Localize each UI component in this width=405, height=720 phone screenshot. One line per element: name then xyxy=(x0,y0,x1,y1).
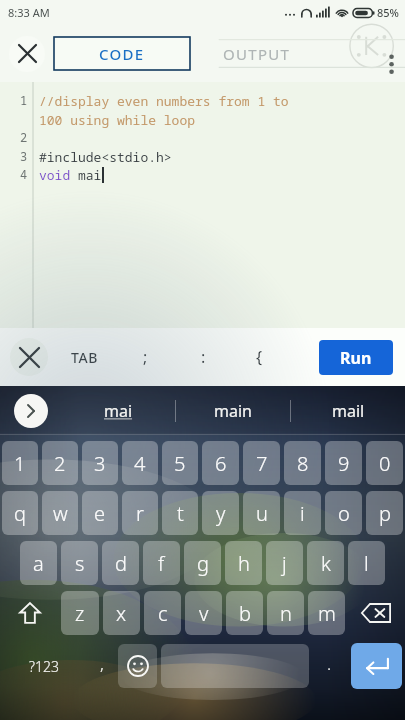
staticText: u xyxy=(256,500,268,527)
staticText: 8 xyxy=(297,450,309,477)
button[interactable]: s xyxy=(61,541,98,585)
button[interactable]: u xyxy=(243,491,280,535)
button[interactable]: 8 xyxy=(284,441,321,485)
button[interactable]: Emoji xyxy=(118,644,157,688)
staticText: //display even numbers from 1 to 100 usi… xyxy=(39,92,289,129)
staticText: 3 xyxy=(20,148,28,164)
button[interactable]: p xyxy=(366,491,403,535)
button[interactable]: j xyxy=(266,541,303,585)
button[interactable]: 5 xyxy=(162,441,198,485)
button[interactable]: CODE xyxy=(54,37,190,70)
button[interactable]: m xyxy=(308,591,345,635)
button[interactable]: o xyxy=(325,491,362,535)
staticText: g xyxy=(197,550,209,577)
staticText: 4 xyxy=(20,166,28,182)
button[interactable]: Hide keyboard xyxy=(4,332,54,382)
staticText: mai xyxy=(104,400,133,422)
staticText: Run xyxy=(340,347,372,369)
staticText: 5 xyxy=(174,450,186,477)
button[interactable]: Enter xyxy=(351,643,402,689)
staticText: m xyxy=(318,600,336,627)
button[interactable]: d xyxy=(102,541,139,585)
staticText: OUTPUT xyxy=(223,44,291,64)
button[interactable]: z xyxy=(61,591,99,635)
staticText: w xyxy=(53,500,68,527)
button[interactable]: . xyxy=(311,640,348,692)
button[interactable]: 7 xyxy=(243,441,280,485)
button[interactable]: f xyxy=(143,541,180,585)
button[interactable]: r xyxy=(122,491,158,535)
button[interactable]: c xyxy=(144,591,181,635)
button[interactable]: OUTPUT xyxy=(190,37,324,70)
button[interactable]: n xyxy=(267,591,304,635)
button[interactable]: i xyxy=(284,491,321,535)
button[interactable]: y xyxy=(202,491,239,535)
button[interactable]: v xyxy=(185,591,222,635)
button[interactable]: a xyxy=(20,541,57,585)
staticText: 6 xyxy=(215,450,227,477)
button[interactable]: 3 xyxy=(82,441,118,485)
button[interactable]: More suggestions xyxy=(0,386,62,435)
staticText: x xyxy=(116,600,127,627)
button[interactable]: Backspace xyxy=(347,588,405,638)
button[interactable]: h xyxy=(225,541,262,585)
staticText: ?123 xyxy=(29,657,59,676)
staticText: 0 xyxy=(379,450,391,477)
staticText: 1 xyxy=(20,92,28,108)
button[interactable]: 9 xyxy=(325,441,362,485)
button[interactable]: main xyxy=(176,386,290,435)
button[interactable]: k xyxy=(307,541,344,585)
button[interactable]: : xyxy=(174,335,232,379)
staticText: 2 xyxy=(20,129,28,145)
staticText: f xyxy=(158,550,165,577)
staticText: main xyxy=(214,400,252,422)
staticText: { xyxy=(256,346,263,368)
staticText: #include<stdio.h> xyxy=(39,148,172,166)
staticText: c xyxy=(158,600,168,627)
staticText: e xyxy=(94,500,106,527)
staticText: l xyxy=(364,550,369,577)
staticText: . xyxy=(327,652,332,675)
staticText: ; xyxy=(143,346,148,368)
staticText: b xyxy=(239,600,251,627)
staticText: 3 xyxy=(94,450,106,477)
button[interactable]: q xyxy=(2,491,38,535)
button[interactable]: 1 xyxy=(2,441,38,485)
button[interactable]: { xyxy=(232,335,286,379)
button[interactable]: 2 xyxy=(42,441,78,485)
button[interactable]: ?123 xyxy=(0,640,88,692)
staticText: r xyxy=(136,500,144,527)
staticText: CODE xyxy=(99,44,145,64)
staticText: a xyxy=(33,550,44,577)
button[interactable]: ; xyxy=(116,335,174,379)
staticText: y xyxy=(216,500,226,527)
button[interactable]: TAB xyxy=(54,335,116,379)
button[interactable]: l xyxy=(348,541,385,585)
staticText: t xyxy=(177,500,184,527)
button[interactable]: 4 xyxy=(122,441,158,485)
button[interactable]: 6 xyxy=(202,441,239,485)
staticText: mail xyxy=(332,400,365,422)
button[interactable]: Space xyxy=(161,644,309,688)
button[interactable]: w xyxy=(42,491,78,535)
staticText: h xyxy=(238,550,250,577)
button[interactable]: , xyxy=(88,640,116,692)
staticText: 7 xyxy=(256,450,268,477)
staticText: 4 xyxy=(134,450,146,477)
button[interactable]: g xyxy=(184,541,221,585)
button[interactable]: b xyxy=(226,591,263,635)
staticText: 1 xyxy=(14,450,26,477)
button[interactable]: Shift xyxy=(0,588,59,638)
button[interactable]: t xyxy=(162,491,198,535)
button[interactable]: x xyxy=(103,591,140,635)
staticText: void mai xyxy=(39,166,102,184)
button[interactable]: Run xyxy=(319,340,393,375)
button[interactable]: mai xyxy=(62,386,175,435)
staticText: v xyxy=(199,600,209,627)
button[interactable]: Close xyxy=(0,25,54,82)
button[interactable]: e xyxy=(82,491,118,535)
staticText: q xyxy=(14,500,26,527)
button[interactable]: mail xyxy=(291,386,405,435)
staticText: k xyxy=(321,550,331,577)
button[interactable]: 0 xyxy=(366,441,403,485)
